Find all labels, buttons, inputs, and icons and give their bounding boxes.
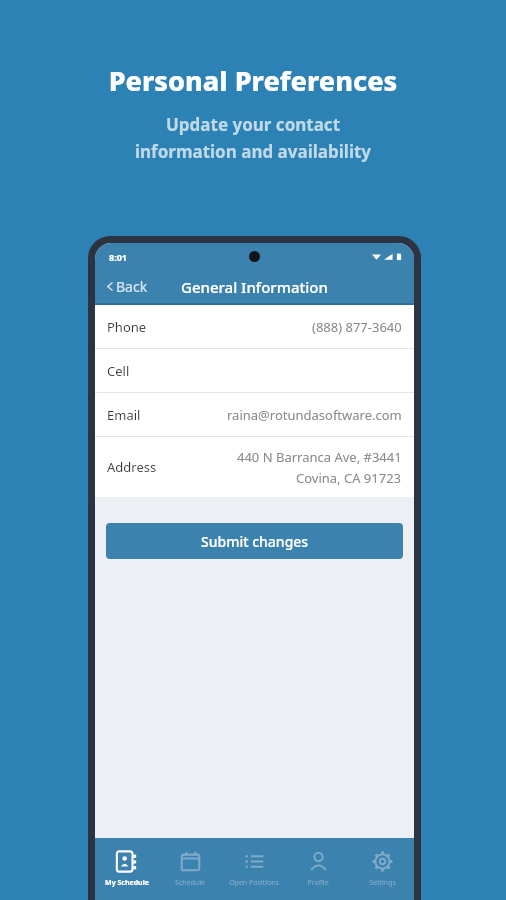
button[interactable]: Open Positions bbox=[222, 838, 286, 900]
staticText: Update your contact bbox=[0, 113, 506, 136]
staticText: raina@rotundasoftware.com bbox=[227, 406, 402, 424]
staticText: Back bbox=[116, 277, 148, 296]
staticText: information and availability bbox=[0, 140, 506, 163]
staticText: My Schedule bbox=[105, 878, 149, 888]
staticText: General Information bbox=[181, 277, 328, 297]
button[interactable]: My Schedule bbox=[95, 838, 158, 900]
staticText: Open Positions bbox=[229, 878, 279, 888]
staticText: Cell bbox=[107, 362, 130, 380]
button[interactable]: Schedule bbox=[158, 838, 222, 900]
staticText: (888) 877-3640 bbox=[312, 318, 402, 336]
staticText: Schedule bbox=[175, 878, 205, 888]
staticText: Settings bbox=[369, 878, 396, 888]
button[interactable]: Address bbox=[95, 437, 414, 497]
button[interactable]: Settings bbox=[350, 838, 414, 900]
button[interactable]: Profile bbox=[286, 838, 350, 900]
staticText: Covina, CA 91723 bbox=[296, 469, 402, 487]
staticText: Phone bbox=[107, 318, 147, 336]
button[interactable]: Submit changes bbox=[106, 523, 403, 559]
staticText: Email bbox=[107, 406, 141, 424]
staticText: 440 N Barranca Ave, #3441 bbox=[237, 448, 402, 466]
button[interactable]: Back bbox=[105, 277, 148, 296]
staticText: Personal Preferences bbox=[0, 62, 506, 99]
staticText: Submit changes bbox=[201, 532, 309, 551]
staticText: Profile bbox=[307, 878, 329, 888]
staticText: Address bbox=[107, 458, 157, 476]
button[interactable]: Phone bbox=[95, 305, 414, 348]
staticText: 8:01 bbox=[109, 251, 127, 263]
button[interactable]: Email bbox=[95, 393, 414, 436]
button[interactable]: Cell bbox=[95, 349, 414, 392]
